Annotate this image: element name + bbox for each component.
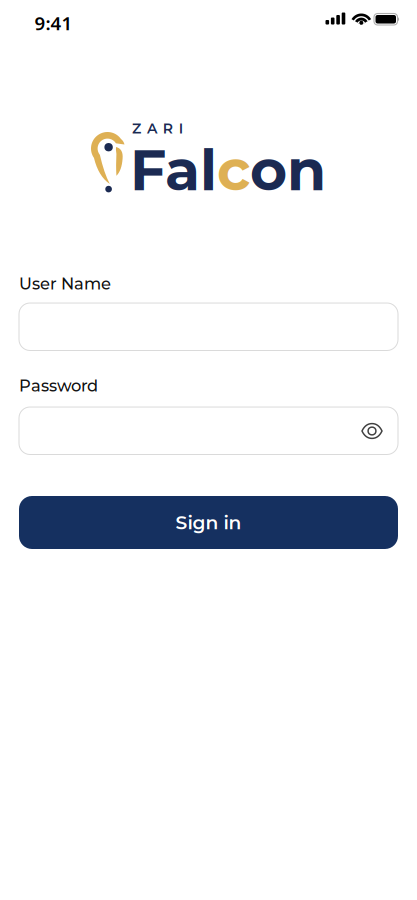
staticText: I — [179, 120, 183, 137]
staticText: A — [147, 120, 157, 137]
button[interactable]: Sign in — [19, 496, 398, 549]
staticText: 9:41 — [34, 10, 72, 35]
staticText: Password — [19, 376, 98, 396]
button[interactable] — [19, 303, 398, 350]
staticText: on — [250, 135, 326, 205]
staticText: c — [217, 135, 250, 205]
staticText: User Name — [19, 274, 111, 294]
staticText: Sign in — [175, 511, 241, 534]
staticText: Fal — [130, 135, 217, 205]
staticText: R — [163, 120, 173, 137]
staticText: Z — [132, 120, 141, 137]
button[interactable] — [19, 407, 398, 454]
